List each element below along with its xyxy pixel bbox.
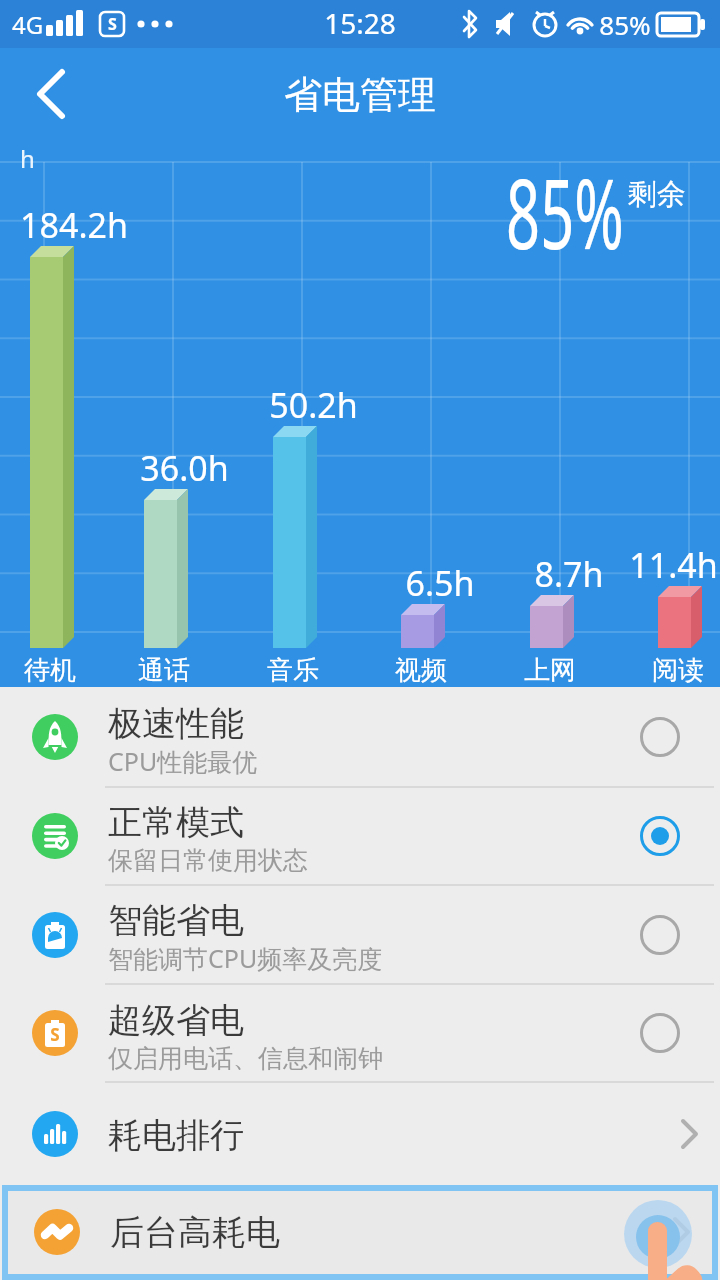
staticText: 保留日常使用状态 <box>108 845 308 876</box>
staticText: 智能省电 <box>108 899 244 942</box>
staticText: CPU性能最优 <box>108 744 258 778</box>
staticText: 极速性能 <box>108 702 244 745</box>
button[interactable]: 耗电排行 <box>0 1082 720 1186</box>
staticText: 通话 <box>138 654 190 687</box>
button[interactable]: 极速性能 <box>0 688 720 787</box>
staticText: 15:28 <box>324 4 396 42</box>
staticText: 音乐 <box>267 654 319 687</box>
staticText: h <box>20 142 35 175</box>
staticText: 正常模式 <box>108 801 244 844</box>
staticText: 视频 <box>395 654 447 687</box>
staticText: 36.0h <box>140 445 229 491</box>
staticText: 仅启用电话、信息和闹钟 <box>108 1043 383 1074</box>
staticText: 50.2h <box>269 382 358 428</box>
staticText: 省电管理 <box>284 71 436 119</box>
staticText: S <box>108 13 117 35</box>
staticText: 后台高耗电 <box>110 1211 280 1254</box>
staticText: 4G <box>12 8 44 41</box>
staticText: 6.5h <box>405 560 475 606</box>
staticText: 耗电排行 <box>108 1114 244 1157</box>
button[interactable]: S <box>0 985 720 1082</box>
button[interactable]: 正常模式 <box>0 787 720 885</box>
staticText: 超级省电 <box>108 999 244 1042</box>
staticText: 184.2h <box>20 202 128 248</box>
staticText: 阅读 <box>652 654 704 687</box>
button[interactable]: 智能省电 <box>0 885 720 985</box>
staticText: 待机 <box>24 654 76 687</box>
button[interactable]: 后台高耗电 <box>2 1185 718 1280</box>
staticText: 85% <box>506 146 624 277</box>
staticText: 11.4h <box>629 542 718 588</box>
staticText: 剩余 <box>628 176 686 213</box>
staticText: 上网 <box>524 654 576 687</box>
staticText: 85% <box>599 7 651 42</box>
staticText: S <box>50 1023 60 1046</box>
button[interactable] <box>20 64 80 124</box>
staticText: 智能调节CPU频率及亮度 <box>108 941 383 975</box>
staticText: 8.7h <box>534 551 604 597</box>
